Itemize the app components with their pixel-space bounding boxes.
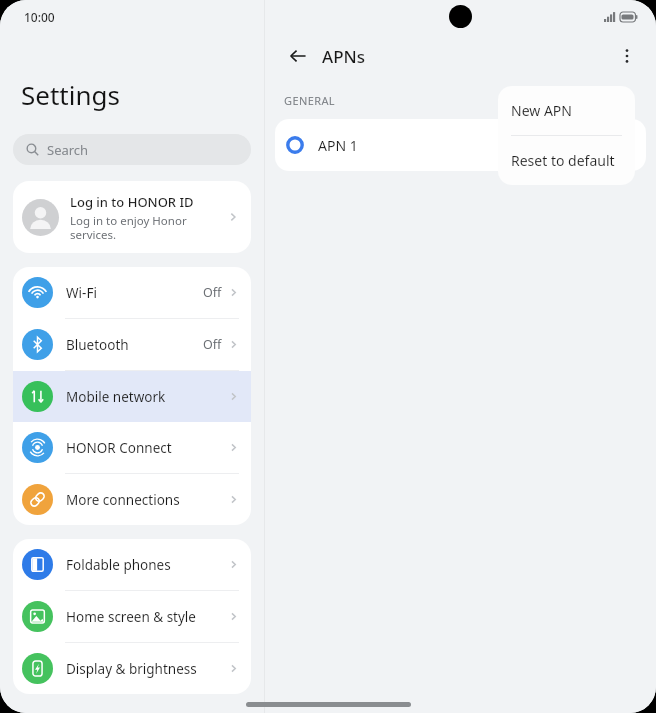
staticText: More connections xyxy=(66,491,228,509)
staticText: Foldable phones xyxy=(66,556,228,574)
staticText: 10:00 xyxy=(24,9,55,25)
staticText: Display & brightness xyxy=(66,660,228,678)
staticText: Off xyxy=(203,284,222,301)
button[interactable]: Search xyxy=(13,134,251,165)
button[interactable]: Mobile network xyxy=(13,371,251,422)
button[interactable]: Bluetooth xyxy=(13,319,251,370)
button[interactable]: Back xyxy=(283,41,313,71)
staticText: Bluetooth xyxy=(66,336,203,354)
staticText: Settings xyxy=(21,77,120,112)
staticText: HONOR Connect xyxy=(66,439,228,457)
staticText: GENERAL xyxy=(284,93,336,108)
staticText: Mobile network xyxy=(66,388,228,406)
button[interactable]: Reset to default xyxy=(498,136,635,185)
button[interactable]: New APN xyxy=(498,86,635,135)
staticText: Off xyxy=(203,336,222,353)
staticText: APNs xyxy=(322,45,365,68)
staticText: Log in to HONOR ID xyxy=(70,193,194,211)
staticText: Log in to enjoy Honor services. xyxy=(70,213,187,242)
button[interactable]: Wi-Fi xyxy=(13,267,251,318)
staticText: Search xyxy=(47,141,89,159)
staticText: Home screen & style xyxy=(66,608,228,626)
button[interactable]: APN 1 xyxy=(275,119,646,171)
button[interactable]: Foldable phones xyxy=(13,539,251,590)
button[interactable]: Home screen & style xyxy=(13,591,251,642)
staticText: Reset to default xyxy=(511,151,615,170)
button[interactable]: Log in to HONOR ID xyxy=(13,181,251,253)
staticText: New APN xyxy=(511,101,572,120)
staticText: APN 1 xyxy=(318,136,358,155)
button[interactable]: HONOR Connect xyxy=(13,422,251,473)
button[interactable]: Display & brightness xyxy=(13,643,251,694)
button[interactable]: More options xyxy=(610,39,644,73)
button[interactable]: More connections xyxy=(13,474,251,525)
staticText: Wi-Fi xyxy=(66,284,203,302)
